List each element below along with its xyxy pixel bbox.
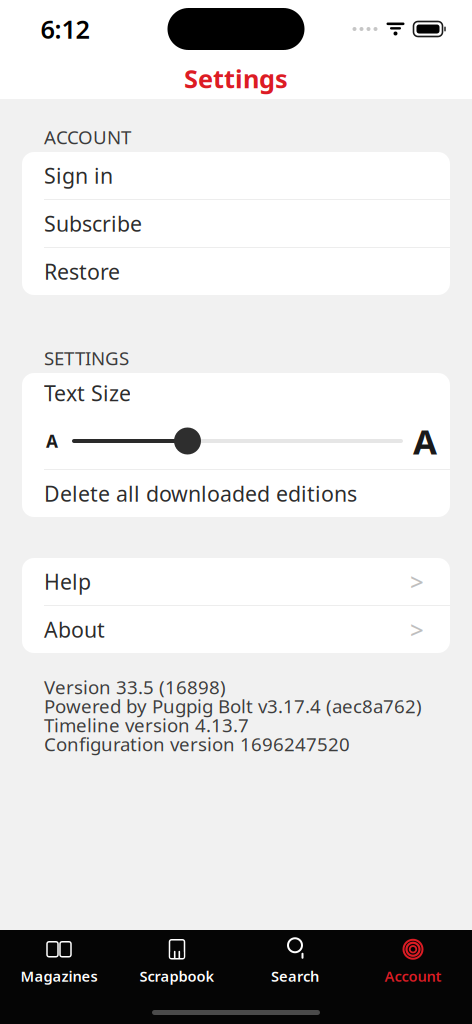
button[interactable]: Help [22,558,450,605]
staticText: Delete all downloaded editions [44,479,357,508]
staticText: Configuration version 1696247520 [44,732,350,756]
button[interactable]: Search [236,930,354,994]
button[interactable]: Scrapbook [118,930,236,994]
staticText: Powered by Pugpig Bolt v3.17.4 (aec8a762… [44,694,422,718]
staticText: Magazines [20,966,97,986]
staticText: > [410,614,424,645]
staticText: Version 33.5 (16898) [44,675,226,699]
staticText: Restore [44,257,120,286]
staticText: Search [271,966,319,986]
button[interactable]: Magazines [0,930,118,994]
button[interactable]: Sign in [22,152,450,199]
staticText: About [44,615,105,644]
button[interactable]: Restore [22,248,450,295]
staticText: A [413,418,437,464]
staticText: Settings [184,62,288,95]
staticText: Text Size [44,379,131,407]
button[interactable]: About [22,606,450,653]
staticText: > [410,566,424,597]
staticText: Help [44,567,91,596]
staticText: 6:12 [40,12,89,46]
button[interactable]: Account [354,930,472,994]
button[interactable]: Subscribe [22,200,450,247]
staticText: Scrapbook [139,966,214,986]
staticText: Subscribe [44,209,142,238]
staticText: SETTINGS [44,346,129,370]
staticText: A [46,429,58,452]
staticText: Timeline version 4.13.7 [44,713,249,737]
button[interactable]: Delete all downloaded editions [22,470,450,517]
staticText: Sign in [44,161,113,190]
staticText: Account [384,966,441,986]
staticText: ACCOUNT [44,125,131,149]
